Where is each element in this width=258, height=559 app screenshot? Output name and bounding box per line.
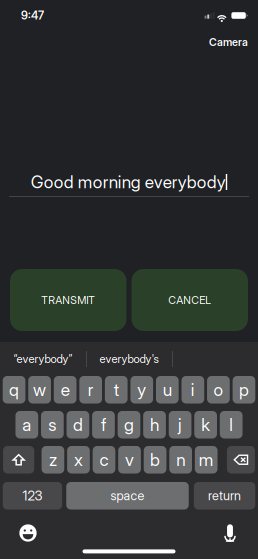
- button[interactable]: v: [118, 446, 141, 473]
- staticText: r: [88, 379, 94, 400]
- button[interactable]: h: [143, 411, 166, 438]
- button[interactable]: d: [67, 411, 89, 438]
- button[interactable]: a: [15, 411, 38, 438]
- staticText: CANCEL: [168, 293, 211, 306]
- staticText: t: [114, 379, 119, 400]
- staticText: g: [124, 414, 134, 435]
- button[interactable]: CANCEL: [131, 269, 248, 331]
- staticText: u: [163, 379, 172, 400]
- staticText: w: [33, 379, 46, 400]
- staticText: s: [48, 414, 56, 435]
- button[interactable]: z: [42, 446, 64, 473]
- button[interactable]: 123: [3, 482, 62, 509]
- button[interactable]: Delete: [227, 446, 255, 473]
- staticText: Camera: [209, 35, 248, 48]
- button[interactable]: t: [105, 376, 128, 403]
- staticText: m: [199, 449, 214, 470]
- button[interactable]: return: [194, 482, 255, 509]
- button[interactable]: f: [92, 411, 115, 438]
- staticText: “everybody”: [13, 352, 72, 366]
- staticText: TRANSMIT: [41, 293, 95, 306]
- button[interactable]: u: [156, 376, 179, 403]
- staticText: b: [150, 449, 160, 470]
- staticText: everybody's: [99, 352, 158, 366]
- staticText: h: [150, 414, 159, 435]
- button[interactable]: s: [41, 411, 64, 438]
- staticText: return: [208, 488, 241, 503]
- button[interactable]: i: [181, 376, 204, 403]
- button[interactable]: y: [130, 376, 153, 403]
- button[interactable]: e: [54, 376, 76, 403]
- button[interactable]: r: [79, 376, 102, 403]
- staticText: y: [137, 379, 146, 400]
- staticText: k: [201, 414, 210, 435]
- button[interactable]: g: [118, 411, 140, 438]
- button[interactable]: Camera: [199, 31, 258, 52]
- staticText: q: [9, 379, 19, 400]
- button[interactable]: space: [66, 482, 189, 509]
- staticText: j: [178, 414, 182, 435]
- staticText: i: [191, 379, 195, 400]
- staticText: z: [49, 449, 57, 470]
- button[interactable]: o: [207, 376, 230, 403]
- button[interactable]: n: [169, 446, 192, 473]
- button[interactable]: Shift: [3, 446, 34, 473]
- button[interactable]: m: [195, 446, 217, 473]
- staticText: v: [125, 449, 134, 470]
- staticText: d: [73, 414, 83, 435]
- button[interactable]: b: [144, 446, 166, 473]
- staticText: e: [61, 379, 70, 400]
- staticText: o: [213, 379, 223, 400]
- button[interactable]: x: [67, 446, 90, 473]
- staticText: f: [101, 414, 106, 435]
- button[interactable]: Dictate: [217, 520, 243, 546]
- button[interactable]: Emoji keyboard: [15, 520, 41, 546]
- staticText: l: [229, 414, 233, 435]
- button[interactable]: j: [169, 411, 191, 438]
- staticText: 123: [22, 488, 42, 504]
- button[interactable]: w: [28, 376, 51, 403]
- button[interactable]: l: [220, 411, 242, 438]
- staticText: space: [110, 488, 144, 503]
- staticText: c: [99, 449, 108, 470]
- staticText: 9:47: [21, 9, 44, 22]
- button[interactable]: p: [233, 376, 255, 403]
- button[interactable]: TRANSMIT: [10, 269, 126, 331]
- button[interactable]: k: [194, 411, 217, 438]
- staticText: x: [74, 449, 83, 470]
- staticText: p: [239, 379, 249, 400]
- staticText: n: [176, 449, 185, 470]
- staticText: a: [22, 414, 31, 435]
- staticText: Good morning everybody: [31, 171, 226, 192]
- button[interactable]: q: [3, 376, 25, 403]
- button[interactable]: c: [93, 446, 115, 473]
